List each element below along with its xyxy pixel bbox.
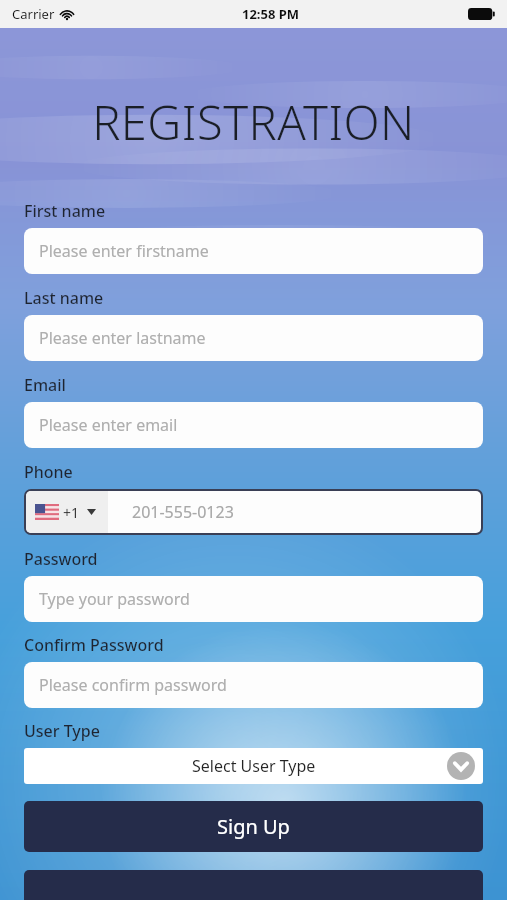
button[interactable]: Sign Up bbox=[24, 801, 483, 852]
staticText: +1 bbox=[63, 503, 80, 522]
staticText: First name bbox=[24, 200, 106, 222]
staticText: User Type bbox=[24, 720, 100, 742]
staticText: Last name bbox=[24, 287, 104, 309]
button[interactable]: Please enter email bbox=[24, 402, 483, 448]
staticText: Please confirm password bbox=[39, 674, 227, 696]
staticText: Sign Up bbox=[217, 813, 290, 840]
staticText: Phone bbox=[24, 461, 73, 483]
button[interactable]: Type your password bbox=[24, 576, 483, 622]
staticText: Email bbox=[24, 374, 66, 396]
other: Open user type list bbox=[447, 752, 475, 780]
staticText: Confirm Password bbox=[24, 634, 164, 656]
staticText: Please enter lastname bbox=[39, 327, 206, 349]
button[interactable]: +1 bbox=[26, 491, 481, 533]
staticText: Select User Type bbox=[192, 755, 316, 777]
staticText: Please enter firstname bbox=[39, 240, 209, 262]
button[interactable]: Please enter firstname bbox=[24, 228, 483, 274]
staticText: Type your password bbox=[39, 588, 190, 610]
button[interactable] bbox=[24, 870, 483, 900]
staticText: 201-555-0123 bbox=[132, 501, 234, 523]
button[interactable]: +1 bbox=[26, 491, 108, 533]
button[interactable]: Select User Type bbox=[24, 748, 483, 784]
staticText: 12:58 PM bbox=[242, 5, 300, 23]
staticText: Carrier bbox=[12, 5, 55, 23]
staticText: Password bbox=[24, 548, 98, 570]
staticText: Please enter email bbox=[39, 414, 178, 436]
staticText: REGISTRATION bbox=[0, 90, 507, 154]
button[interactable]: Please confirm password bbox=[24, 662, 483, 708]
button[interactable]: Please enter lastname bbox=[24, 315, 483, 361]
